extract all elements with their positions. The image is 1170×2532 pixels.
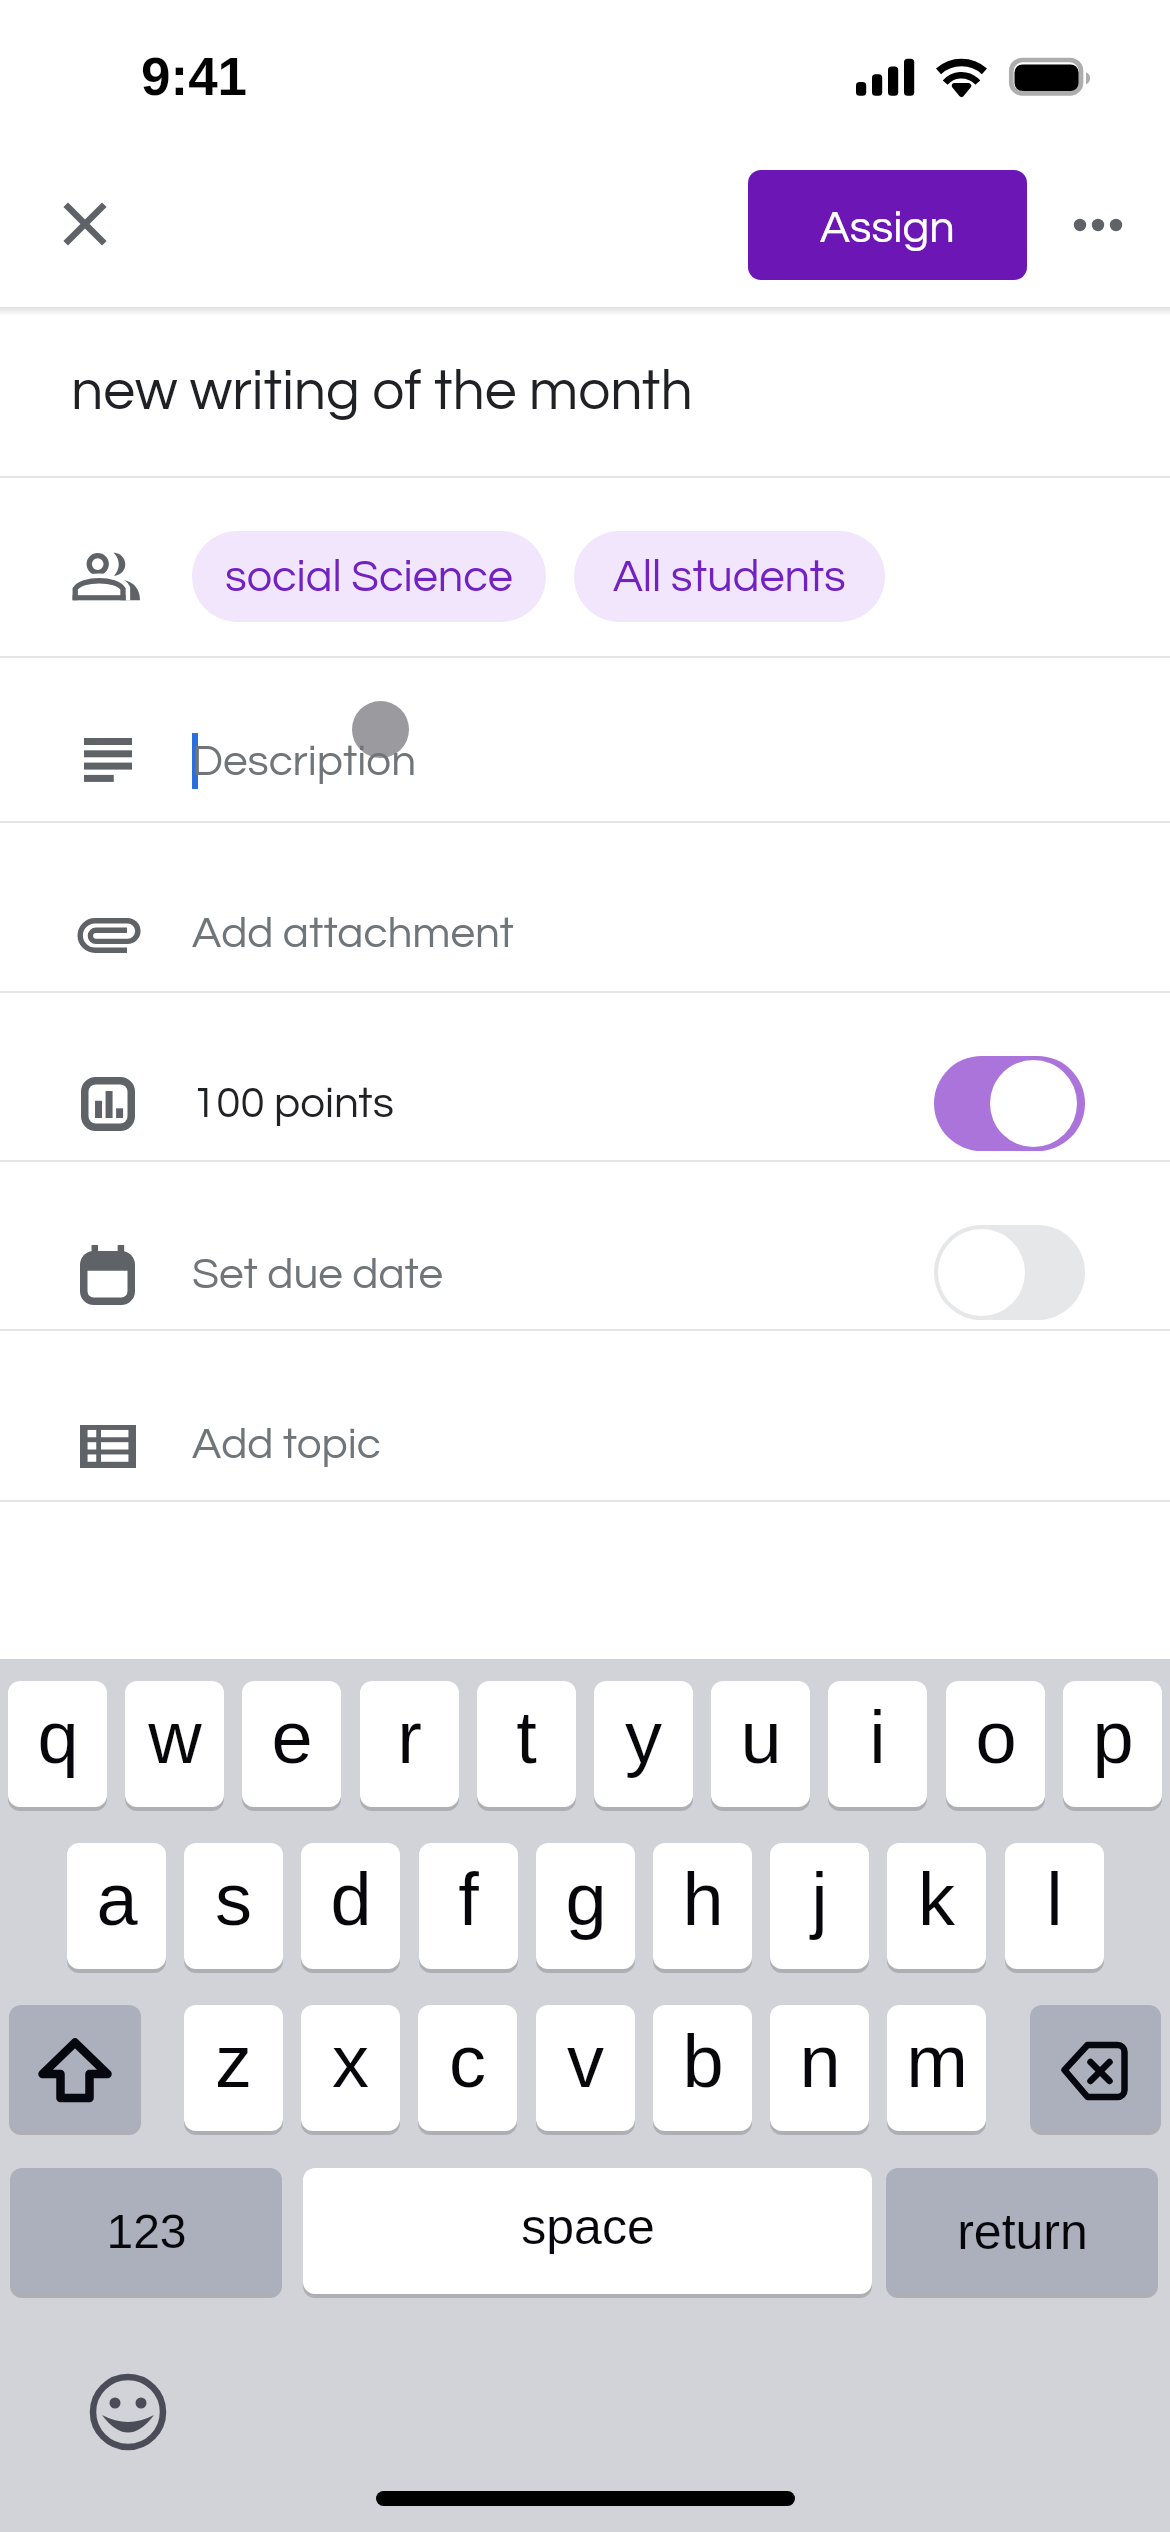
staticText: f: [458, 1858, 479, 1941]
button[interactable]: v: [536, 2005, 635, 2131]
staticText: g: [565, 1858, 607, 1941]
button[interactable]: Points toggle on: [934, 1056, 1085, 1151]
button[interactable]: Add attachment: [0, 823, 1170, 991]
button[interactable]: d: [301, 1843, 400, 1969]
staticText: return: [957, 2204, 1088, 2260]
button[interactable]: j: [770, 1843, 869, 1969]
staticText: p: [1092, 1696, 1134, 1779]
button[interactable]: k: [887, 1843, 986, 1969]
button[interactable]: social Science: [192, 531, 546, 622]
staticText: w: [148, 1696, 202, 1779]
button[interactable]: h: [653, 1843, 752, 1969]
button[interactable]: q: [8, 1681, 107, 1807]
button[interactable]: All students: [574, 531, 885, 622]
staticText: Assign: [820, 205, 955, 251]
staticText: o: [975, 1696, 1017, 1779]
staticText: r: [397, 1696, 422, 1779]
button[interactable]: t: [477, 1681, 576, 1807]
staticText: d: [330, 1858, 372, 1941]
button[interactable]: Assign: [748, 170, 1027, 280]
staticText: e: [271, 1696, 313, 1779]
staticText: c: [449, 2020, 486, 2103]
staticText: u: [740, 1696, 782, 1779]
button[interactable]: f: [419, 1843, 518, 1969]
staticText: i: [869, 1696, 886, 1779]
staticText: Add topic: [192, 1422, 381, 1467]
button[interactable]: Due date toggle off: [934, 1225, 1085, 1320]
staticText: t: [516, 1696, 537, 1779]
button[interactable]: x: [301, 2005, 400, 2131]
staticText: Description: [192, 739, 417, 784]
button[interactable]: u: [711, 1681, 810, 1807]
staticText: l: [1046, 1858, 1063, 1941]
button[interactable]: g: [536, 1843, 635, 1969]
staticText: v: [567, 2020, 604, 2103]
button[interactable]: i: [828, 1681, 927, 1807]
button[interactable]: Close: [35, 174, 135, 274]
staticText: a: [96, 1858, 138, 1941]
button[interactable]: p: [1063, 1681, 1162, 1807]
button[interactable]: n: [770, 2005, 869, 2131]
staticText: All students: [613, 554, 846, 600]
button[interactable]: Add topic: [0, 1331, 1170, 1500]
staticText: m: [906, 2020, 968, 2103]
button[interactable]: r: [360, 1681, 459, 1807]
staticText: 100 points: [192, 1081, 394, 1126]
button[interactable]: Backspace: [1030, 2005, 1161, 2131]
button[interactable]: l: [1005, 1843, 1104, 1969]
staticText: Set due date: [192, 1252, 444, 1297]
button[interactable]: o: [946, 1681, 1045, 1807]
button[interactable]: Description: [0, 658, 1170, 822]
staticText: k: [918, 1858, 955, 1941]
button[interactable]: 123: [10, 2168, 282, 2294]
button[interactable]: a: [67, 1843, 166, 1969]
button[interactable]: 100 points: [0, 993, 1170, 1160]
staticText: b: [682, 2020, 724, 2103]
staticText: j: [811, 1858, 828, 1941]
button[interactable]: c: [418, 2005, 517, 2131]
button[interactable]: Shift: [9, 2005, 141, 2131]
staticText: z: [215, 2020, 252, 2103]
button[interactable]: new writing of the month: [0, 307, 1170, 476]
button[interactable]: social Science: [0, 478, 1170, 656]
staticText: 123: [106, 2205, 187, 2259]
staticText: y: [625, 1696, 662, 1779]
button[interactable]: Set due date: [0, 1162, 1170, 1329]
staticText: social Science: [225, 554, 513, 600]
staticText: n: [799, 2020, 841, 2103]
staticText: q: [37, 1696, 79, 1779]
button[interactable]: s: [184, 1843, 283, 1969]
button[interactable]: w: [125, 1681, 224, 1807]
staticText: s: [215, 1858, 252, 1941]
button[interactable]: Emoji keyboard: [88, 2372, 168, 2452]
staticText: h: [682, 1858, 724, 1941]
staticText: x: [332, 2020, 369, 2103]
button[interactable]: return: [886, 2168, 1158, 2294]
button[interactable]: More options: [1048, 175, 1148, 275]
staticText: 9:41: [141, 47, 248, 106]
staticText: Add attachment: [192, 911, 514, 956]
staticText: new writing of the month: [71, 362, 693, 421]
button[interactable]: e: [242, 1681, 341, 1807]
button[interactable]: y: [594, 1681, 693, 1807]
button[interactable]: space: [303, 2168, 872, 2294]
staticText: space: [521, 2199, 655, 2255]
button[interactable]: z: [184, 2005, 283, 2131]
button[interactable]: m: [887, 2005, 986, 2131]
button[interactable]: b: [653, 2005, 752, 2131]
